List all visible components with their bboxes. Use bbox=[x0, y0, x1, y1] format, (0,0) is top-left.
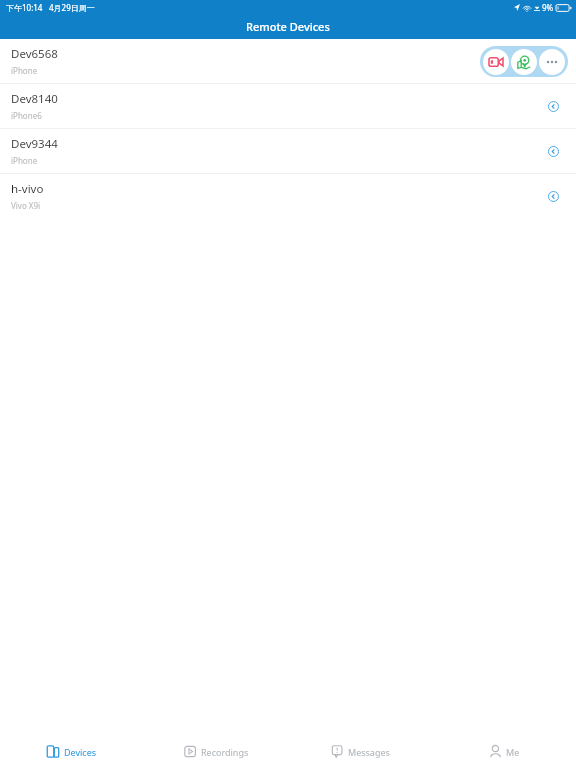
staticText: Vivo X9i bbox=[11, 200, 41, 211]
staticText: Me bbox=[506, 746, 520, 758]
staticText: Messages bbox=[348, 746, 390, 758]
button[interactable]: Messages bbox=[288, 735, 432, 768]
staticText: Dev8140 bbox=[11, 91, 58, 107]
button[interactable]: More options bbox=[539, 49, 565, 75]
button[interactable]: Recordings bbox=[144, 735, 288, 768]
button[interactable]: Location bbox=[511, 49, 537, 75]
staticText: Devices bbox=[64, 746, 97, 758]
staticText: iPhone6 bbox=[11, 110, 42, 121]
staticText: Dev9344 bbox=[11, 136, 58, 152]
staticText: 下午10:14 bbox=[6, 2, 43, 13]
staticText: 4月29日周一 bbox=[49, 2, 95, 13]
button[interactable]: Dev6568 bbox=[0, 39, 576, 83]
staticText: iPhone bbox=[11, 155, 38, 166]
button[interactable]: Devices bbox=[0, 735, 144, 768]
staticText: Dev6568 bbox=[11, 46, 58, 62]
button[interactable]: Dev8140 bbox=[0, 83, 576, 128]
button[interactable]: h-vivo bbox=[0, 173, 576, 218]
staticText: h-vivo bbox=[11, 181, 44, 197]
staticText: iPhone bbox=[11, 65, 38, 76]
button[interactable]: Dev9344 bbox=[0, 128, 576, 173]
button[interactable]: Expand device bbox=[538, 91, 568, 121]
staticText: Recordings bbox=[201, 746, 249, 758]
button[interactable]: Expand device bbox=[538, 136, 568, 166]
button[interactable]: Video call bbox=[483, 49, 509, 75]
staticText: 9% bbox=[542, 2, 554, 13]
staticText: Remote Devices bbox=[246, 19, 330, 34]
button[interactable]: Me bbox=[432, 735, 576, 768]
button[interactable]: Expand device bbox=[538, 181, 568, 211]
